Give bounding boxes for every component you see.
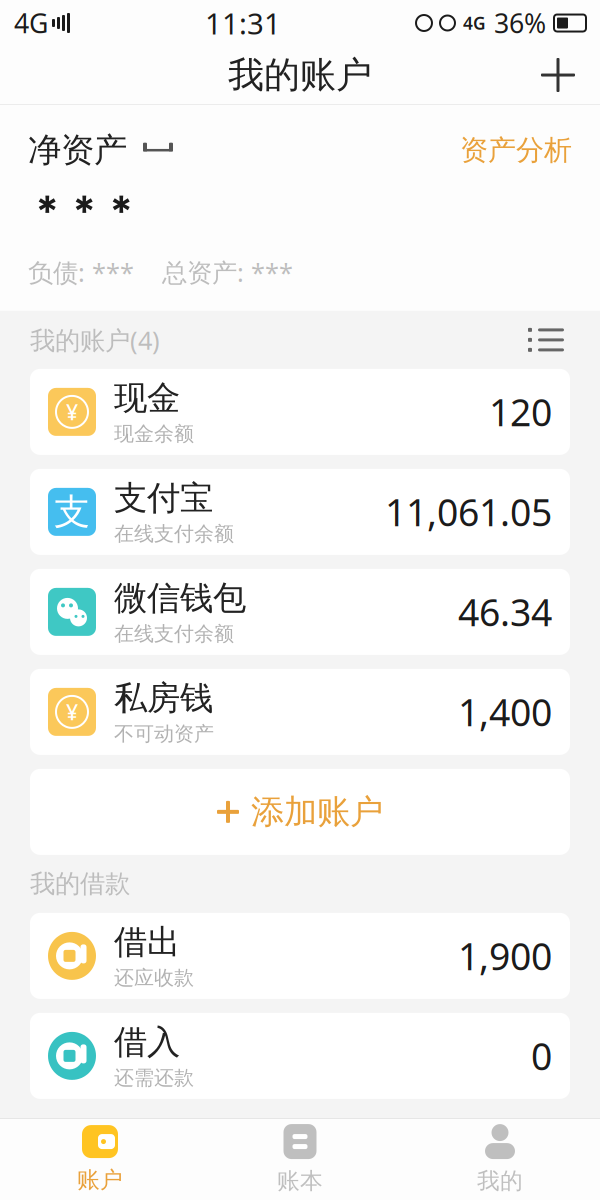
- staticText: 添加账户: [251, 791, 383, 832]
- button[interactable]: 借入: [30, 1013, 570, 1099]
- button[interactable]: 微信钱包: [30, 569, 570, 655]
- staticText: 我的账户: [228, 53, 372, 97]
- button[interactable]: ¥: [30, 369, 570, 455]
- staticText: 支: [54, 490, 90, 534]
- staticText: 负债: ***: [28, 255, 134, 289]
- button[interactable]: 支: [30, 469, 570, 555]
- staticText: 在线支付余额: [114, 622, 234, 646]
- staticText: 11,061.05: [385, 487, 552, 537]
- staticText: 46.34: [458, 587, 552, 637]
- staticText: 我的借款: [30, 868, 130, 899]
- staticText: 支付宝: [114, 478, 213, 518]
- staticText: ¥: [66, 698, 78, 726]
- staticText: 还需还款: [114, 1066, 194, 1090]
- button[interactable]: 账本: [200, 1119, 400, 1200]
- button[interactable]: Add account: [530, 47, 586, 103]
- staticText: 资产分析: [460, 133, 572, 167]
- staticText: 现金余额: [114, 422, 194, 446]
- button[interactable]: 借出: [30, 913, 570, 999]
- staticText: 不可动资产: [114, 722, 214, 746]
- button[interactable]: 账户: [0, 1119, 200, 1200]
- staticText: ＊＊＊: [28, 187, 139, 233]
- staticText: 私房钱: [114, 678, 213, 718]
- button[interactable]: 资产分析: [460, 127, 572, 173]
- staticText: 0: [531, 1031, 552, 1081]
- button[interactable]: 我的: [400, 1119, 600, 1200]
- staticText: 账户: [77, 1166, 123, 1194]
- button[interactable]: Switch list layout: [522, 322, 570, 358]
- staticText: 在线支付余额: [114, 522, 234, 546]
- staticText: 我的: [477, 1167, 523, 1195]
- button[interactable]: 添加账户: [30, 769, 570, 855]
- staticText: 总资产: ***: [162, 255, 293, 289]
- staticText: 微信钱包: [114, 578, 246, 618]
- button[interactable]: Show balance: [127, 133, 175, 167]
- staticText: 净资产: [28, 130, 127, 171]
- staticText: 现金: [114, 378, 180, 418]
- button[interactable]: ¥: [30, 669, 570, 755]
- staticText: 120: [489, 387, 552, 437]
- staticText: ¥: [66, 398, 78, 426]
- staticText: 还应收款: [114, 966, 194, 990]
- staticText: 1,400: [458, 687, 552, 737]
- staticText: 1,900: [458, 931, 552, 981]
- staticText: 4G: [463, 11, 486, 34]
- staticText: 账本: [277, 1167, 323, 1195]
- staticText: 我的账户(4): [30, 323, 160, 357]
- staticText: 借出: [114, 922, 180, 962]
- staticText: 借入: [114, 1022, 180, 1062]
- staticText: 11:31: [205, 3, 281, 42]
- staticText: 36%: [494, 5, 546, 41]
- staticText: 4G: [14, 5, 48, 41]
